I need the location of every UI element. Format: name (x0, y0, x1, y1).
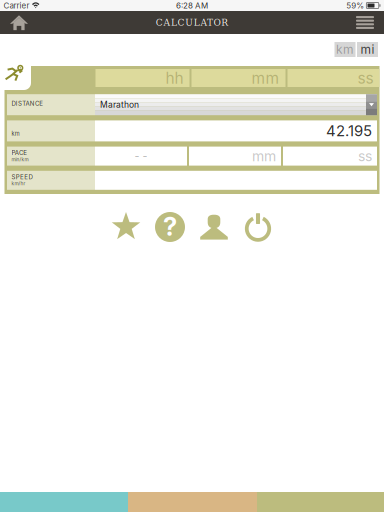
button[interactable]: Home (0, 11, 38, 34)
button[interactable]: Activity (0, 36, 31, 90)
button[interactable]: Menu (346, 11, 384, 34)
staticText: ss (357, 69, 373, 87)
staticText: hh (165, 69, 183, 87)
staticText: mm (252, 148, 276, 164)
staticText: ? (163, 211, 177, 242)
staticText: Marathon (100, 99, 139, 110)
staticText: min/km (11, 156, 28, 162)
staticText: CALCULATOR (156, 17, 228, 28)
staticText: DISTANCE (11, 100, 43, 107)
staticText: km (11, 130, 20, 137)
staticText: PACE (11, 149, 27, 156)
staticText: mm (251, 69, 279, 87)
button[interactable]: Marathon (95, 94, 377, 115)
staticText: 6:28 AM (176, 1, 208, 10)
button[interactable]: mi (357, 42, 378, 57)
staticText: SPEED (11, 173, 32, 181)
staticText: mi (360, 42, 374, 57)
staticText: 42.195 (326, 122, 372, 140)
staticText: Carrier (3, 1, 29, 10)
staticText: 59% (346, 1, 364, 10)
button[interactable]: km (334, 42, 355, 57)
button[interactable]: Help (155, 212, 185, 242)
button[interactable]: Favorite (111, 212, 141, 242)
staticText: km (336, 42, 354, 57)
staticText: - - (134, 150, 147, 162)
button[interactable]: Power (243, 212, 273, 242)
staticText: ss (358, 148, 372, 164)
staticText: km/hr (11, 181, 25, 186)
button[interactable]: Profile (199, 212, 229, 242)
